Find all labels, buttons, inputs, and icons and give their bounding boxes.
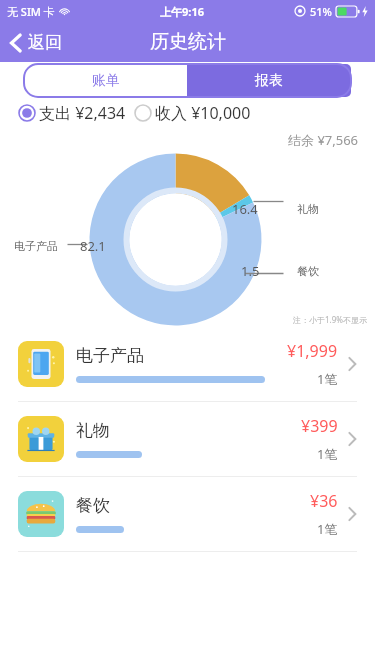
staticText: 注：小于1.9%不显示 xyxy=(293,314,367,325)
staticText: 餐饮 xyxy=(76,495,110,516)
other: 查看详情 xyxy=(348,356,357,372)
staticText: 51% xyxy=(310,4,332,19)
staticText: 1.5 xyxy=(241,262,260,280)
button[interactable]: 电子产品 xyxy=(0,327,375,402)
staticText: 餐饮 xyxy=(297,264,319,278)
staticText: 电子产品 xyxy=(14,239,58,253)
staticText: 账单 xyxy=(92,72,120,90)
staticText: 上午9:16 xyxy=(160,4,204,19)
button[interactable]: 返回 xyxy=(0,26,74,59)
button[interactable]: 账单 xyxy=(24,64,187,97)
staticText: 1笔 xyxy=(317,370,338,388)
staticText: 支出 ¥2,434 xyxy=(39,102,126,124)
staticText: 电子产品 xyxy=(76,345,144,366)
staticText: 1笔 xyxy=(317,520,338,538)
other: 查看详情 xyxy=(348,431,357,447)
button[interactable]: 支出 ¥2,434 xyxy=(18,102,126,124)
button[interactable]: 收入 ¥10,000 xyxy=(134,102,251,124)
staticText: 16.4 xyxy=(232,200,258,218)
button[interactable]: 礼物 xyxy=(0,402,375,477)
staticText: 礼物 xyxy=(297,202,319,216)
staticText: 结余 ¥7,566 xyxy=(288,131,359,149)
staticText: 无 SIM 卡 xyxy=(7,4,55,19)
other: 查看详情 xyxy=(348,506,357,522)
staticText: ¥399 xyxy=(301,415,338,437)
staticText: 报表 xyxy=(255,72,283,90)
staticText: ¥1,999 xyxy=(287,340,338,362)
button[interactable]: 餐饮 xyxy=(0,477,375,552)
staticText: 礼物 xyxy=(76,420,110,441)
staticText: ¥36 xyxy=(310,490,338,512)
staticText: 收入 ¥10,000 xyxy=(155,102,251,124)
staticText: 1笔 xyxy=(317,445,338,463)
staticText: 历史统计 xyxy=(150,30,226,54)
staticText: 返回 xyxy=(28,32,62,53)
staticText: 82.1 xyxy=(80,237,106,255)
button[interactable]: 报表 xyxy=(187,64,351,97)
